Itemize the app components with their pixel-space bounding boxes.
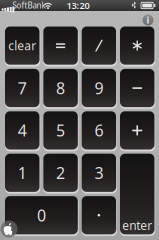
- staticText: 1: [18, 162, 27, 183]
- button[interactable]: Equals: [43, 26, 78, 65]
- button[interactable]: 7: [5, 69, 39, 107]
- button[interactable]: 4: [5, 111, 39, 149]
- button[interactable]: Plus: [120, 111, 154, 149]
- button[interactable]: 6: [82, 111, 116, 149]
- button[interactable]: clear: [5, 26, 39, 65]
- button[interactable]: 2: [43, 154, 78, 192]
- button[interactable]: Minus: [120, 69, 154, 107]
- button[interactable]: Divide: [82, 26, 116, 65]
- staticText: 6: [94, 120, 103, 141]
- staticText: 4: [18, 120, 27, 141]
- button[interactable]: 3: [82, 154, 116, 192]
- staticText: 9: [94, 77, 103, 99]
- staticText: enter: [122, 217, 152, 233]
- staticText: SoftBank: [12, 0, 45, 11]
- button[interactable]: Decimal point: [82, 196, 116, 234]
- staticText: i: [146, 14, 149, 26]
- button[interactable]: 5: [43, 111, 78, 149]
- staticText: 5: [56, 120, 65, 141]
- staticText: clear: [8, 38, 36, 53]
- button[interactable]: 9: [82, 69, 116, 107]
- button[interactable]: 1: [5, 154, 39, 192]
- staticText: 8: [56, 77, 65, 99]
- button[interactable]: Info: [140, 12, 155, 27]
- button[interactable]: enter: [120, 154, 154, 234]
- staticText: 7: [18, 77, 27, 99]
- button[interactable]: 0: [5, 196, 78, 234]
- staticText: 13:20: [66, 0, 89, 12]
- staticText: 2: [56, 162, 65, 183]
- staticText: 3: [94, 162, 103, 183]
- button[interactable]: 8: [43, 69, 78, 107]
- button[interactable]: Multiply: [120, 26, 154, 65]
- staticText: 0: [37, 205, 46, 226]
- button[interactable]: Home: [0, 219, 18, 238]
